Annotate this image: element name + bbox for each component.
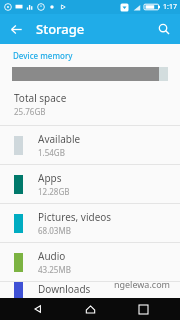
button[interactable]: Available	[0, 126, 180, 164]
button[interactable]: Recent apps	[128, 298, 158, 320]
staticText: Apps	[38, 171, 62, 185]
button[interactable]: Downloads	[0, 282, 180, 298]
button[interactable]: Pictures, videos	[0, 204, 180, 242]
staticText: Downloads	[38, 282, 91, 296]
button[interactable]: Back	[23, 298, 53, 320]
staticText: 1:17	[163, 2, 177, 12]
staticText: 12.28GB	[38, 186, 70, 197]
button[interactable]: Navigate up	[4, 17, 28, 41]
button[interactable]: Search	[152, 17, 176, 41]
staticText: Storage	[36, 20, 85, 38]
button[interactable]: Home	[75, 298, 105, 320]
staticText: Audio	[38, 249, 66, 263]
staticText: Available	[38, 132, 81, 146]
button[interactable]: Apps	[0, 165, 180, 203]
staticText: Pictures, videos	[38, 210, 112, 224]
staticText: 43.25MB	[38, 264, 71, 275]
staticText: Device memory	[13, 50, 73, 61]
button[interactable]: Audio	[0, 243, 180, 281]
staticText: Total space	[14, 91, 67, 105]
staticText: 25.76GB	[14, 106, 46, 117]
staticText: 1.54GB	[38, 147, 65, 158]
staticText: ngelewa.com	[113, 278, 170, 290]
staticText: 68.03MB	[38, 225, 71, 236]
